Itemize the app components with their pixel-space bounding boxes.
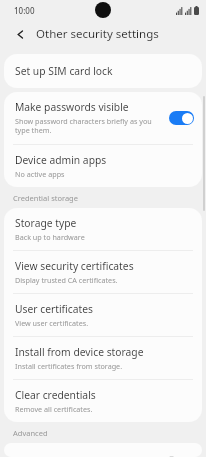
staticText: Device admin apps: [15, 153, 107, 167]
button[interactable]: Make passwords visible: [4, 92, 202, 144]
staticText: Storage type: [15, 216, 77, 230]
staticText: Back up to hardware: [15, 232, 85, 242]
staticText: User certificates: [15, 302, 93, 316]
button[interactable]: Clear credentials: [4, 380, 202, 422]
staticText: Clear credentials: [15, 388, 96, 402]
button[interactable]: Back: [11, 25, 29, 43]
staticText: Advanced: [13, 428, 48, 438]
staticText: Install from device storage: [15, 345, 144, 359]
staticText: View user certificates.: [15, 318, 89, 328]
staticText: No active apps: [15, 169, 65, 179]
staticText: 10:00: [14, 5, 35, 16]
staticText: Install certificates from storage.: [15, 361, 123, 371]
staticText: Display trusted CA certificates.: [15, 275, 118, 285]
button[interactable]: Make passwords visible toggle: [169, 111, 194, 125]
staticText: View security certificates: [15, 259, 134, 273]
staticText: Set up SIM card lock: [15, 64, 113, 78]
button[interactable]: Storage type: [4, 208, 202, 250]
staticText: Show password characters briefly as you …: [15, 116, 164, 136]
button[interactable]: Device admin apps: [4, 145, 202, 187]
staticText: Other security settings: [36, 26, 159, 42]
button[interactable]: Install from device storage: [4, 337, 202, 379]
staticText: Credential storage: [13, 193, 78, 203]
staticText: Make passwords visible: [15, 100, 129, 114]
staticText: Remove all certificates.: [15, 404, 93, 414]
button[interactable]: Set up SIM card lock: [4, 54, 202, 88]
button[interactable]: View security certificates: [4, 251, 202, 293]
button[interactable]: User certificates: [4, 294, 202, 336]
